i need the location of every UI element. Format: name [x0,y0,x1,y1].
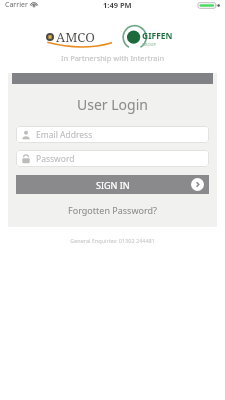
staticText: 1:49 PM [103,0,132,10]
staticText: Carrier [5,0,28,10]
staticText: Email Address [36,129,93,141]
button[interactable]: Password [16,150,209,167]
staticText: In Partnership with Intertrain [61,53,165,63]
button[interactable]: Email Address [16,126,209,143]
staticText: User Login [8,95,217,114]
staticText: Password [36,153,75,165]
button[interactable]: Forgotten Password? [8,201,217,219]
staticText: General Enquiries: 01302 244481 [0,237,225,244]
staticText: Forgotten Password? [8,204,217,216]
button[interactable]: SIGN IN [16,175,209,194]
staticText: GROUP [142,42,156,47]
staticText: SIGN IN [96,179,130,191]
other: Sign in [191,178,204,191]
staticText: GIFFEN [142,30,173,42]
staticText: AMCO [56,28,95,46]
